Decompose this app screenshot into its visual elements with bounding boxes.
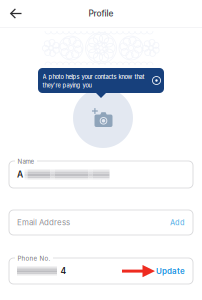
button[interactable]: Back	[4, 1, 28, 25]
staticText: 4	[60, 266, 66, 276]
staticText: A photo helps your contacts know that	[42, 73, 144, 80]
staticText: Add	[170, 218, 185, 227]
button[interactable]: A	[9, 161, 193, 188]
staticText: Email Address	[17, 218, 70, 227]
staticText: Name	[17, 158, 34, 165]
button[interactable]: Add profile photo	[73, 88, 133, 148]
button[interactable]: More info	[152, 76, 161, 85]
staticText: Profile	[88, 8, 113, 19]
staticText: A	[17, 169, 23, 180]
staticText: Update	[156, 266, 185, 276]
staticText: they're paying you	[42, 82, 91, 89]
staticText: Phone No.	[17, 255, 50, 262]
button[interactable]: Add	[160, 212, 185, 233]
button[interactable]: Update	[146, 260, 185, 282]
